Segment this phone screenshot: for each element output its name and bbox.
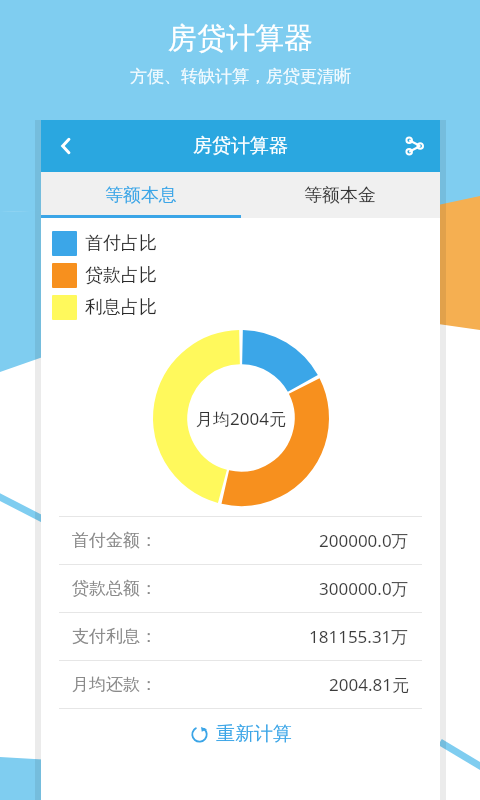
button[interactable]: 首付金额： — [41, 517, 440, 564]
staticText: 支付利息： — [72, 626, 157, 647]
staticText: 月均2004元 — [196, 407, 286, 430]
staticText: 2004.81元 — [329, 673, 409, 696]
button[interactable]: 利息占比 — [41, 294, 440, 320]
staticText: 181155.31万 — [309, 625, 409, 648]
staticText: 贷款总额： — [72, 578, 157, 599]
button[interactable]: 首付占比 — [41, 230, 440, 256]
button[interactable]: 贷款总额： — [41, 565, 440, 612]
button[interactable]: Back — [41, 120, 93, 172]
staticText: 利息占比 — [85, 296, 157, 319]
button[interactable]: Share — [388, 120, 440, 172]
staticText: 方便、转缺计算，房贷更清晰 — [130, 66, 351, 87]
staticText: 首付占比 — [85, 232, 157, 255]
staticText: 等额本金 — [304, 184, 376, 207]
staticText: 200000.0万 — [319, 529, 409, 552]
button[interactable]: 等额本息 — [41, 172, 240, 218]
staticText: 房贷计算器 — [193, 134, 288, 158]
button[interactable]: 重新计算 — [41, 709, 440, 759]
button[interactable]: 支付利息： — [41, 613, 440, 660]
button[interactable]: 等额本金 — [240, 172, 440, 218]
staticText: 等额本息 — [105, 184, 177, 207]
staticText: 重新计算 — [216, 722, 292, 746]
staticText: 贷款占比 — [85, 264, 157, 287]
staticText: 首付金额： — [72, 530, 157, 551]
staticText: 月均还款： — [72, 674, 157, 695]
staticText: 房贷计算器 — [168, 20, 313, 57]
button[interactable]: 贷款占比 — [41, 262, 440, 288]
button[interactable]: 月均还款： — [41, 661, 440, 708]
staticText: 300000.0万 — [319, 577, 409, 600]
